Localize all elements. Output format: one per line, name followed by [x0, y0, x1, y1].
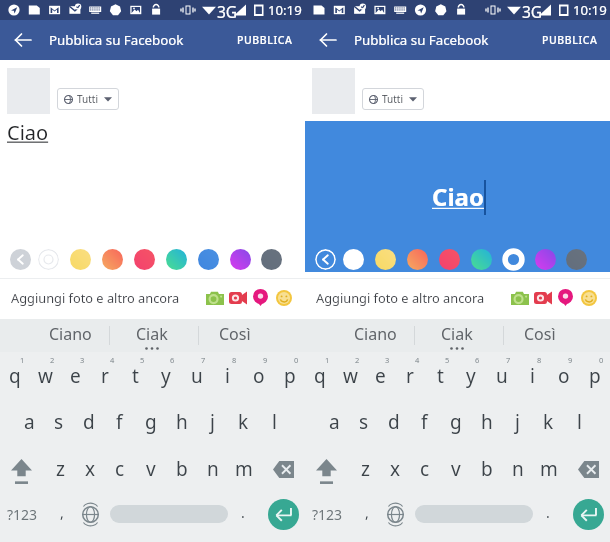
button[interactable]: m: [533, 448, 564, 490]
button[interactable]: Colour: [134, 249, 155, 270]
button[interactable]: q: [305, 355, 335, 397]
button[interactable]: y: [455, 355, 486, 397]
button[interactable]: x: [75, 448, 105, 490]
button[interactable]: p: [274, 355, 305, 397]
button[interactable]: u: [486, 355, 517, 397]
button[interactable]: ?123: [305, 493, 351, 535]
button[interactable]: Colour: [166, 249, 187, 270]
button[interactable]: a: [14, 401, 44, 443]
button[interactable]: Aggiungi foto e altro ancora: [305, 279, 610, 319]
button[interactable]: Così: [195, 319, 275, 352]
button[interactable]: Ciano: [335, 319, 415, 352]
button[interactable]: Colour: [471, 249, 492, 270]
button[interactable]: Colour: [375, 249, 396, 270]
button[interactable]: Language: [382, 493, 413, 535]
button[interactable]: i: [212, 355, 243, 397]
button[interactable]: d: [379, 401, 409, 443]
button[interactable]: e: [60, 355, 90, 397]
button[interactable]: Language: [77, 493, 108, 535]
button[interactable]: Shift: [305, 448, 350, 490]
button[interactable]: h: [471, 401, 502, 443]
button[interactable]: Ciak: [417, 319, 497, 352]
button[interactable]: w: [335, 355, 365, 397]
button[interactable]: Colour: [566, 249, 587, 270]
button[interactable]: u: [181, 355, 212, 397]
button[interactable]: ,: [46, 493, 77, 535]
button[interactable]: r: [90, 355, 120, 397]
button[interactable]: b: [166, 448, 197, 490]
button[interactable]: Colour: [70, 249, 91, 270]
button[interactable]: l: [564, 401, 595, 443]
button[interactable]: Back: [0, 20, 44, 60]
button[interactable]: m: [228, 448, 259, 490]
button[interactable]: c: [105, 448, 135, 490]
button[interactable]: Backspace: [259, 448, 305, 490]
button[interactable]: x: [380, 448, 410, 490]
button[interactable]: Back: [315, 249, 336, 270]
button[interactable]: Colour: [102, 249, 123, 270]
button[interactable]: r: [395, 355, 425, 397]
button[interactable]: Colour: [535, 249, 556, 270]
button[interactable]: o: [548, 355, 579, 397]
button[interactable]: g: [135, 401, 166, 443]
button[interactable]: Backspace: [564, 448, 610, 490]
button[interactable]: Ciano: [30, 319, 110, 352]
button[interactable]: Back: [10, 249, 31, 270]
button[interactable]: Space: [108, 493, 227, 535]
button[interactable]: v: [135, 448, 166, 490]
button[interactable]: t: [120, 355, 150, 397]
button[interactable]: g: [440, 401, 471, 443]
button[interactable]: q: [0, 355, 30, 397]
button[interactable]: h: [166, 401, 197, 443]
button[interactable]: Selected colour: [503, 249, 524, 270]
button[interactable]: t: [425, 355, 455, 397]
button[interactable]: f: [409, 401, 440, 443]
button[interactable]: Così: [500, 319, 580, 352]
button[interactable]: i: [517, 355, 548, 397]
button[interactable]: n: [502, 448, 533, 490]
button[interactable]: p: [579, 355, 610, 397]
button[interactable]: b: [471, 448, 502, 490]
button[interactable]: .: [227, 493, 258, 535]
button[interactable]: w: [30, 355, 60, 397]
button[interactable]: o: [243, 355, 274, 397]
button[interactable]: Colour: [198, 249, 219, 270]
button[interactable]: Colour: [439, 249, 460, 270]
button[interactable]: l: [259, 401, 290, 443]
button[interactable]: y: [150, 355, 181, 397]
button[interactable]: Aggiungi foto e altro ancora: [0, 279, 305, 319]
button[interactable]: No colour: [38, 249, 59, 270]
button[interactable]: ,: [351, 493, 382, 535]
button[interactable]: ?123: [0, 493, 46, 535]
button[interactable]: s: [44, 401, 74, 443]
button[interactable]: f: [104, 401, 135, 443]
button[interactable]: PUBBLICA: [225, 25, 305, 55]
button[interactable]: v: [440, 448, 471, 490]
button[interactable]: Shift: [0, 448, 45, 490]
button[interactable]: k: [533, 401, 564, 443]
button[interactable]: a: [319, 401, 349, 443]
button[interactable]: Space: [413, 493, 532, 535]
button[interactable]: k: [228, 401, 259, 443]
button[interactable]: No colour: [343, 249, 364, 270]
button[interactable]: Colour: [230, 249, 251, 270]
button[interactable]: Enter: [258, 493, 305, 535]
button[interactable]: c: [410, 448, 440, 490]
button[interactable]: z: [350, 448, 380, 490]
button[interactable]: Tutti: [57, 88, 119, 110]
button[interactable]: j: [502, 401, 533, 443]
button[interactable]: Ciak: [112, 319, 192, 352]
button[interactable]: n: [197, 448, 228, 490]
button[interactable]: z: [45, 448, 75, 490]
button[interactable]: j: [197, 401, 228, 443]
button[interactable]: d: [74, 401, 104, 443]
button[interactable]: s: [349, 401, 379, 443]
button[interactable]: Back: [305, 20, 349, 60]
button[interactable]: Tutti: [362, 88, 424, 110]
button[interactable]: e: [365, 355, 395, 397]
button[interactable]: PUBBLICA: [530, 25, 610, 55]
button[interactable]: Colour: [261, 249, 282, 270]
button[interactable]: .: [532, 493, 563, 535]
